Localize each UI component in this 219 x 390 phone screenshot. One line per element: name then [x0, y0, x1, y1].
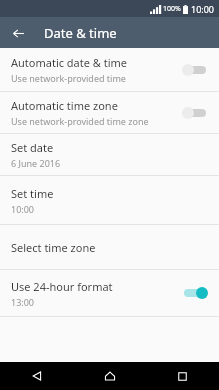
staticText: 10:00 — [191, 3, 215, 15]
button[interactable]: Toggle off — [182, 105, 208, 121]
staticText: 100% — [163, 4, 181, 14]
staticText: Use 24-hour format — [11, 279, 113, 294]
staticText: 10:00 — [11, 203, 35, 215]
staticText: Automatic time zone — [11, 98, 118, 113]
staticText: Set time — [11, 186, 54, 201]
staticText: Set date — [11, 140, 54, 155]
button[interactable]: Set time — [0, 176, 219, 224]
staticText: Automatic date & time — [11, 55, 128, 70]
staticText: Date & time — [44, 24, 117, 42]
button[interactable]: Set date — [0, 134, 219, 175]
staticText: Use network-provided time — [11, 72, 126, 84]
staticText: Use network-provided time zone — [11, 115, 149, 127]
staticText: Select time zone — [11, 240, 96, 255]
staticText: 13:00 — [11, 296, 35, 308]
button[interactable]: Back — [7, 22, 29, 44]
button[interactable]: Use 24-hour format — [0, 270, 219, 316]
button[interactable]: Home — [73, 362, 146, 390]
button[interactable]: Back — [0, 362, 73, 390]
staticText: 6 June 2016 — [11, 157, 61, 169]
button[interactable]: Toggle on — [182, 285, 208, 301]
button[interactable]: Recents — [146, 362, 219, 390]
button[interactable]: Automatic date & time — [0, 48, 219, 91]
button[interactable]: Toggle off — [182, 62, 208, 78]
button[interactable]: Automatic time zone — [0, 92, 219, 133]
button[interactable]: Select time zone — [0, 225, 219, 269]
